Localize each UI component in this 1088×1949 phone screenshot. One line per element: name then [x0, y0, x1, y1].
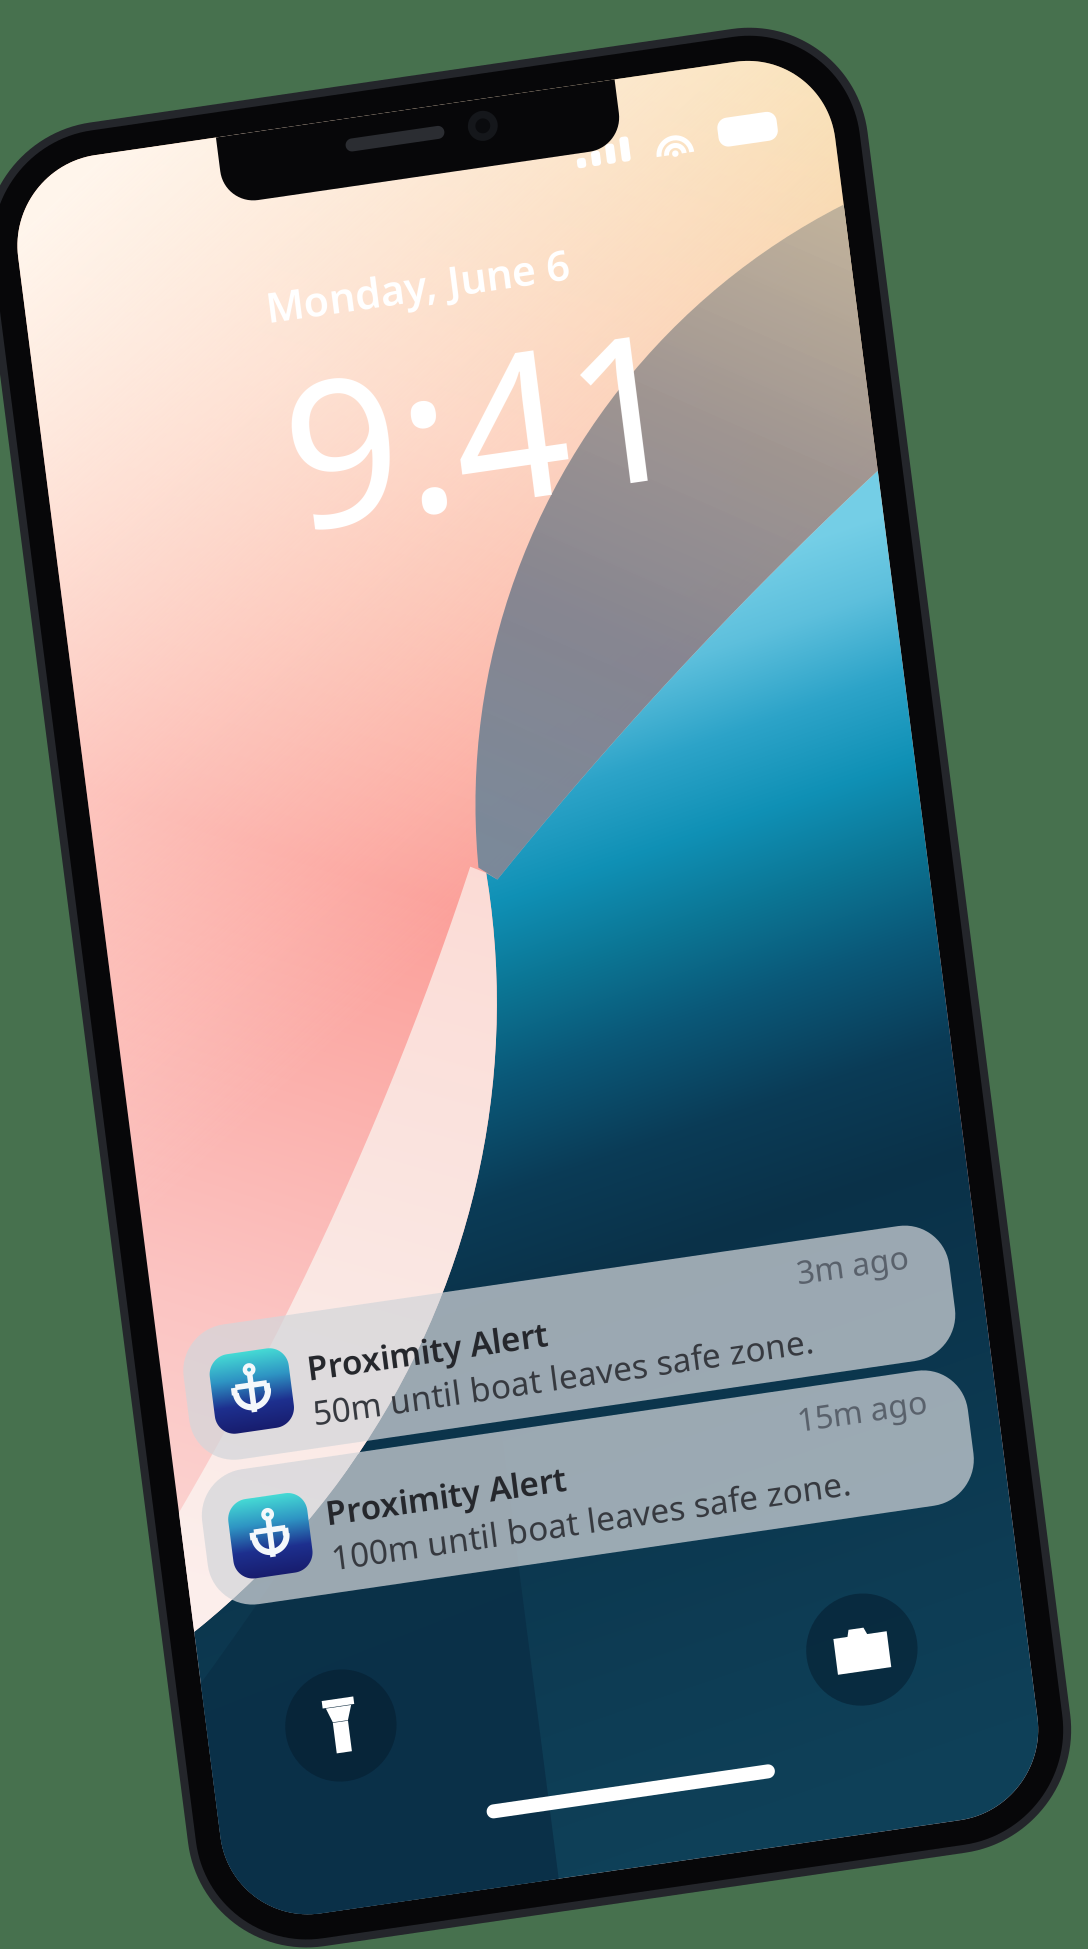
- staticText: Proximity Alert: [179, 1242, 423, 1286]
- button[interactable]: 3m ago: [55, 1209, 831, 1345]
- staticText: 9:41: [273, 222, 675, 491]
- staticText: 3m ago: [678, 1219, 791, 1261]
- button[interactable]: 15m ago: [55, 1355, 831, 1491]
- staticText: Monday, June 6: [273, 181, 581, 236]
- staticText: 15m ago: [660, 1365, 791, 1407]
- staticText: 50m until boat leaves safe zone.: [179, 1287, 686, 1332]
- staticText: Proximity Alert: [179, 1388, 423, 1432]
- button[interactable]: Flashlight: [111, 1567, 223, 1679]
- staticText: 100m until boat leaves safe zone.: [179, 1433, 705, 1478]
